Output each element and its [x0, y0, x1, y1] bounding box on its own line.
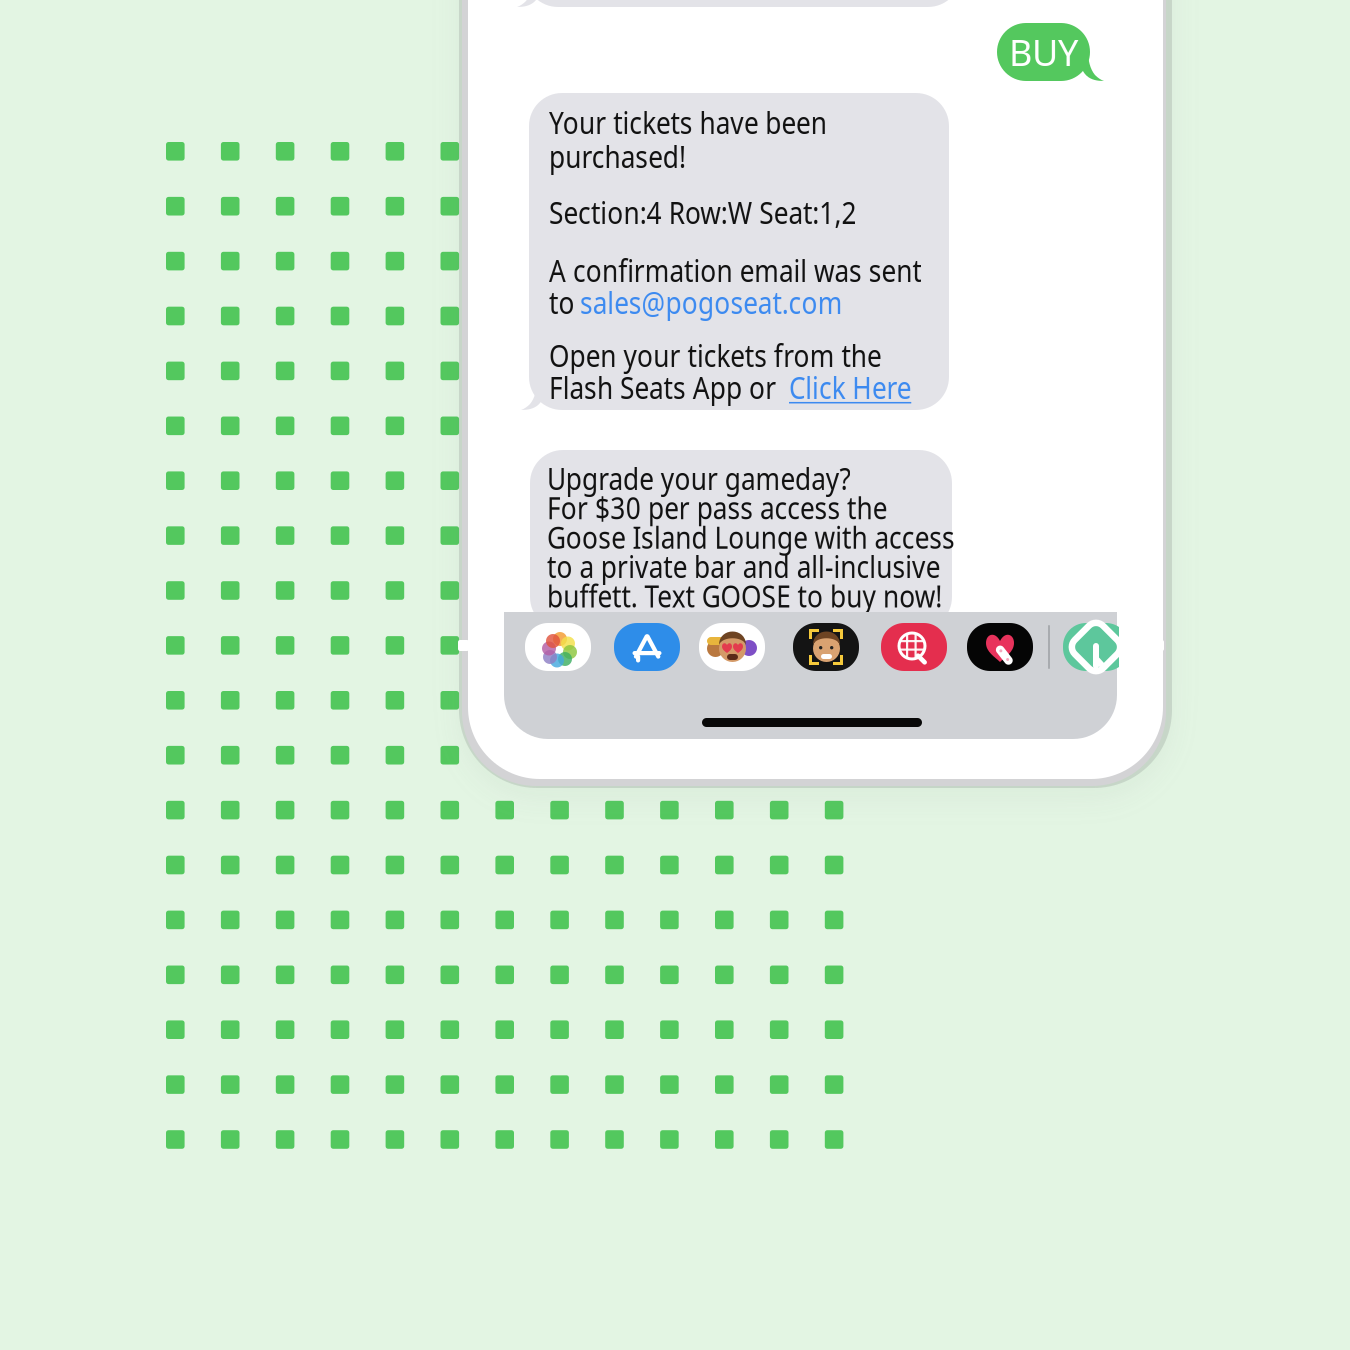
- staticText: BUY: [1009, 28, 1078, 76]
- button[interactable]: Navigation: [1063, 623, 1129, 671]
- button[interactable]: Memoji sticker: [699, 623, 765, 671]
- button[interactable]: Photos: [525, 623, 591, 671]
- button[interactable]: App Store: [614, 623, 680, 671]
- staticText: Section:4 Row:W Seat:1,2: [549, 192, 909, 232]
- staticText: Open your tickets from the: [549, 335, 938, 375]
- staticText: A confirmation email was sent: [549, 250, 985, 290]
- staticText: Flash Seats App or: [549, 367, 815, 407]
- staticText: to a private bar and all-inclusive: [547, 546, 1007, 586]
- staticText: Goose Island Lounge with access: [547, 516, 1024, 557]
- staticText: For $30 per pass access the: [547, 487, 945, 528]
- staticText: Your tickets have been: [549, 102, 874, 142]
- button[interactable]: sales@pogoseat.com: [580, 286, 1120, 318]
- button[interactable]: Memoji: [793, 623, 859, 671]
- button[interactable]: Image search: [881, 623, 947, 671]
- staticText: to: [549, 282, 579, 322]
- staticText: Upgrade your gameday?: [547, 458, 902, 498]
- staticText: buffett. Text GOOSE to buy now!: [547, 575, 1009, 616]
- staticText: purchased!: [549, 136, 709, 176]
- staticText: Click Here: [789, 367, 932, 407]
- button[interactable]: BUY: [997, 23, 1107, 85]
- button[interactable]: Click Here: [789, 371, 1329, 403]
- button[interactable]: Health: [967, 623, 1033, 671]
- staticText: sales@pogoseat.com: [580, 282, 887, 322]
